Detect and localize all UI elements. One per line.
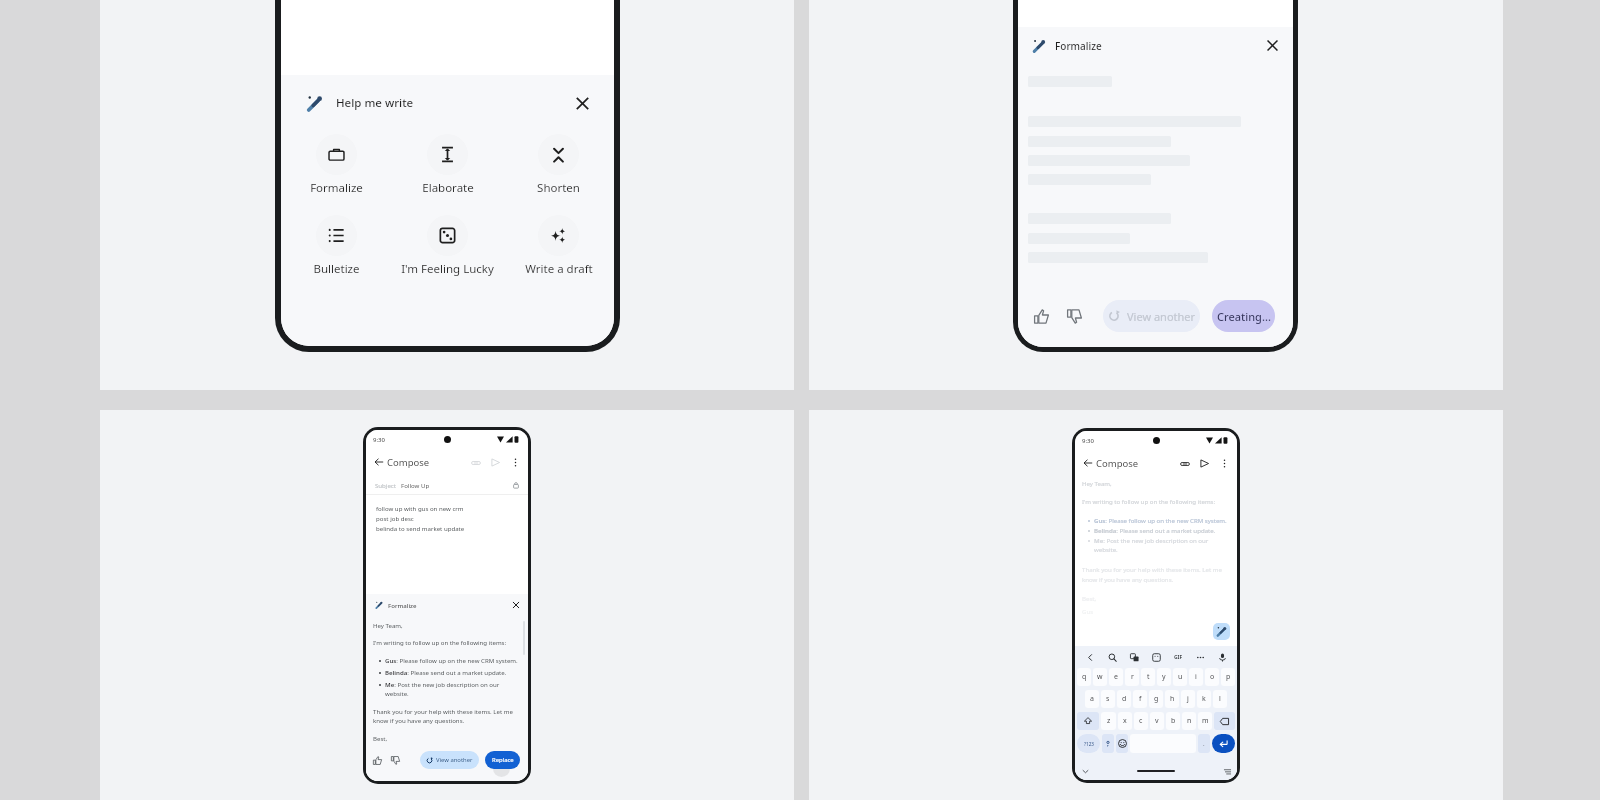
button[interactable]: Bad response — [390, 755, 401, 766]
button[interactable]: d — [1117, 690, 1131, 708]
staticText: p — [1226, 672, 1231, 682]
button[interactable]: translate — [1123, 646, 1145, 668]
staticText: Formalize — [1055, 39, 1102, 53]
button[interactable]: b — [1166, 712, 1180, 730]
button[interactable]: Hide keyboard — [1080, 766, 1090, 776]
button[interactable]: Send — [1198, 457, 1211, 470]
staticText: Replace — [492, 756, 514, 764]
button[interactable]: View another — [1103, 300, 1200, 332]
staticText: Bulletize — [313, 261, 360, 277]
staticText: I'm Feeling Lucky — [401, 261, 494, 277]
button[interactable]: Keyboard options — [1222, 766, 1232, 776]
button[interactable]: g — [1149, 690, 1163, 708]
button[interactable]: i — [1189, 668, 1203, 686]
staticText: 9:30 — [1082, 437, 1094, 445]
button[interactable]: Replace — [485, 751, 520, 769]
button[interactable]: f — [1133, 690, 1147, 708]
button[interactable]: e — [1109, 668, 1123, 686]
button[interactable]: q — [1077, 668, 1091, 686]
button[interactable]: View another — [420, 751, 479, 769]
staticText: h — [1170, 694, 1175, 704]
staticText: follow up with gus on new crm post job d… — [376, 504, 465, 532]
button[interactable]: I'm Feeling Lucky — [392, 215, 503, 277]
button[interactable]: x — [1118, 712, 1132, 730]
button[interactable]: Shorten — [503, 134, 614, 196]
button[interactable]: a — [1085, 690, 1099, 708]
button[interactable]: Close — [573, 94, 591, 112]
button[interactable]: Attach file — [1178, 457, 1191, 470]
button[interactable]: Backspace — [1214, 712, 1235, 730]
staticText: View another — [1127, 309, 1196, 324]
button[interactable]: Close — [1265, 38, 1280, 53]
staticText: u — [1178, 672, 1183, 682]
button[interactable]: search — [1101, 646, 1123, 668]
staticText: Hey Team, — [373, 621, 403, 629]
button[interactable]: Back — [1082, 457, 1094, 469]
staticText: c — [1139, 716, 1143, 726]
button[interactable]: z — [1101, 712, 1116, 730]
staticText: o — [1210, 672, 1215, 682]
button[interactable]: Send — [489, 456, 502, 469]
button[interactable]: Creating... — [1212, 300, 1275, 332]
staticText: l — [1219, 694, 1221, 704]
button[interactable]: l — [1213, 690, 1227, 708]
staticText: w — [1097, 672, 1103, 682]
staticText: . — [1203, 740, 1205, 748]
button[interactable]: r — [1125, 668, 1139, 686]
button[interactable]: m — [1198, 712, 1212, 730]
staticText: y — [1162, 672, 1166, 682]
button[interactable]: s — [1101, 690, 1115, 708]
staticText: Compose — [1096, 457, 1139, 470]
button[interactable]: mic — [1211, 646, 1233, 668]
staticText: 9:30 — [373, 436, 385, 444]
button[interactable]: . — [1198, 734, 1210, 753]
button[interactable]: h — [1165, 690, 1179, 708]
button[interactable]: u — [1173, 668, 1187, 686]
button[interactable]: sticker — [1145, 646, 1167, 668]
button[interactable]: n — [1182, 712, 1196, 730]
button[interactable]: Help me write — [1213, 623, 1230, 640]
button[interactable]: v — [1150, 712, 1164, 730]
staticText: Gus: Please follow up on the new CRM sys… — [385, 656, 518, 664]
staticText: Creating... — [1217, 309, 1271, 324]
button[interactable]: c — [1134, 712, 1148, 730]
button[interactable]: Good response — [372, 755, 383, 766]
button[interactable]: chevron — [1079, 646, 1101, 668]
button[interactable]: Bad response — [1065, 307, 1083, 325]
button[interactable]: Good response — [1032, 307, 1050, 325]
button[interactable]: Emoji — [1116, 734, 1128, 753]
button[interactable]: Formalize — [281, 134, 392, 196]
button[interactable]: More options — [1218, 457, 1231, 470]
staticText: Follow Up — [401, 481, 430, 489]
button[interactable]: y — [1157, 668, 1171, 686]
button[interactable]: More options — [509, 456, 522, 469]
button[interactable]: ?123 — [1077, 734, 1100, 753]
button[interactable]: Attach file — [469, 456, 482, 469]
staticText: n — [1187, 716, 1192, 726]
button[interactable]: gif — [1167, 646, 1189, 668]
staticText: Compose — [387, 456, 430, 469]
button[interactable]: Bulletize — [281, 215, 392, 277]
button[interactable]: more — [1189, 646, 1211, 668]
button[interactable]: w — [1093, 668, 1107, 686]
button[interactable]: Enter — [1212, 734, 1235, 753]
button[interactable]: j — [1181, 690, 1195, 708]
staticText: View another — [436, 756, 473, 764]
button[interactable]: Close — [512, 601, 520, 609]
button[interactable]: Shift — [1077, 712, 1099, 730]
button[interactable]: Settings — [1102, 734, 1114, 753]
staticText: v — [1155, 716, 1159, 726]
staticText: Hey Team, — [1082, 479, 1112, 487]
staticText: x — [1123, 716, 1127, 726]
staticText: Thank you for your help with these items… — [373, 707, 521, 725]
button[interactable]: Elaborate — [392, 134, 503, 196]
button[interactable]: Write a draft — [503, 215, 614, 277]
button[interactable]: p — [1221, 668, 1235, 686]
staticText: Elaborate — [422, 180, 474, 196]
button[interactable]: k — [1197, 690, 1211, 708]
button[interactable]: Back — [373, 456, 385, 468]
button[interactable]: o — [1205, 668, 1219, 686]
staticText: Me: Post the new job description on our … — [385, 680, 521, 698]
button[interactable]: t — [1141, 668, 1155, 686]
